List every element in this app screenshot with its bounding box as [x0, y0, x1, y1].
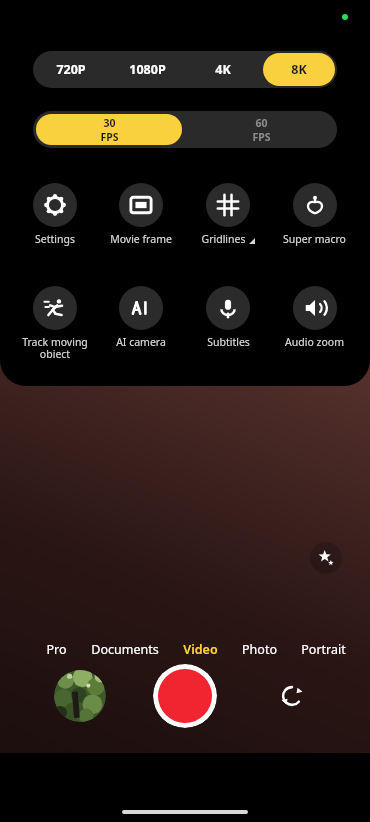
button[interactable]: Photo	[240, 638, 279, 661]
staticText: Track moving object	[22, 335, 88, 358]
button[interactable]: 30	[36, 114, 182, 145]
button[interactable]: Track moving object	[12, 286, 98, 358]
staticText: Photo	[242, 641, 277, 658]
staticText: Video	[183, 641, 218, 658]
staticText: Subtitles	[207, 335, 250, 349]
button[interactable]: 4K	[187, 53, 259, 86]
staticText: Gridlines	[201, 232, 246, 246]
staticText: Portrait	[301, 641, 346, 658]
button[interactable]: AI camera	[98, 286, 184, 358]
button[interactable]: Gallery	[54, 670, 106, 722]
staticText: Movie frame	[110, 232, 172, 246]
button[interactable]: Record	[153, 664, 217, 728]
staticText: 1080P	[129, 61, 166, 78]
staticText: FPS	[252, 130, 271, 144]
staticText: Super macro	[283, 232, 346, 246]
button[interactable]: Movie frame	[98, 183, 184, 255]
staticText: FPS	[100, 130, 119, 144]
button[interactable]: Switch camera	[272, 676, 312, 716]
button[interactable]: 60	[188, 114, 334, 145]
button[interactable]: Effects	[310, 542, 342, 574]
staticText: 720P	[56, 61, 86, 78]
button[interactable]: Gridlines	[185, 183, 271, 255]
button[interactable]: Video	[181, 638, 220, 661]
button[interactable]: Pro	[44, 638, 69, 661]
button[interactable]: 1080P	[111, 53, 183, 86]
staticText: Documents	[91, 641, 159, 658]
staticText: Pro	[46, 641, 67, 658]
button[interactable]: Super macro	[271, 183, 357, 255]
button[interactable]: Audio zoom	[271, 286, 357, 358]
staticText: Audio zoom	[285, 335, 344, 349]
staticText: AI camera	[116, 335, 166, 349]
staticText: Settings	[35, 232, 75, 246]
staticText: 30	[103, 116, 116, 130]
button[interactable]: Documents	[89, 638, 161, 661]
button[interactable]: Settings	[12, 183, 98, 255]
button[interactable]: Portrait	[299, 638, 348, 661]
staticText: 4K	[215, 61, 231, 78]
button[interactable]: Subtitles	[185, 286, 271, 358]
staticText: 60	[255, 116, 268, 130]
button[interactable]: 720P	[35, 53, 107, 86]
staticText: 8K	[291, 61, 307, 78]
button[interactable]: 8K	[263, 53, 335, 86]
